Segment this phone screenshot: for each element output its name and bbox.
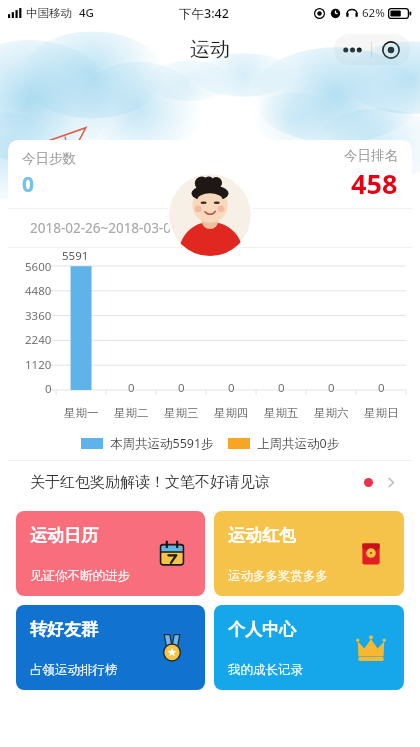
staticText: 运动多多奖赏多多 bbox=[228, 568, 328, 584]
staticText: 占领运动排行榜 bbox=[30, 662, 118, 678]
staticText: 星期四 bbox=[214, 406, 249, 420]
staticText: 0 bbox=[328, 380, 335, 396]
staticText: 0 bbox=[22, 170, 35, 199]
staticText: 运动 bbox=[190, 37, 230, 62]
staticText: 星期一 bbox=[64, 406, 99, 420]
button[interactable]: User avatar bbox=[169, 174, 251, 256]
button[interactable]: 运动日历 bbox=[16, 511, 205, 596]
staticText: 本周共运动5591步 bbox=[110, 435, 214, 452]
staticText: 0 bbox=[128, 380, 135, 396]
button[interactable]: 运动红包 bbox=[214, 511, 404, 596]
button[interactable]: 关于红包奖励解读！文笔不好请见谅 bbox=[8, 461, 412, 503]
staticText: 0 bbox=[228, 380, 235, 396]
staticText: 下午3:42 bbox=[179, 5, 229, 22]
staticText: 今日排名 bbox=[344, 147, 398, 164]
staticText: 2018-02-26~2018-03-04运动步数 bbox=[30, 219, 233, 237]
staticText: 上周共运动0步 bbox=[257, 435, 340, 452]
staticText: 个人中心 bbox=[228, 619, 296, 640]
staticText: 5591 bbox=[62, 248, 89, 264]
staticText: 2240 bbox=[25, 332, 52, 348]
staticText: 关于红包奖励解读！文笔不好请见谅 bbox=[30, 473, 270, 492]
staticText: 62% bbox=[362, 5, 385, 21]
staticText: 星期六 bbox=[314, 406, 349, 420]
staticText: 星期三 bbox=[164, 406, 199, 420]
button[interactable]: Target bbox=[372, 34, 410, 65]
staticText: 我的成长记录 bbox=[228, 662, 303, 678]
staticText: 运动红包 bbox=[228, 525, 296, 546]
staticText: 458 bbox=[351, 165, 398, 202]
staticText: 0 bbox=[278, 380, 285, 396]
button[interactable]: More options bbox=[334, 34, 371, 65]
staticText: 4G bbox=[79, 5, 94, 21]
staticText: 星期二 bbox=[114, 406, 149, 420]
staticText: 0 bbox=[378, 380, 385, 396]
staticText: 中国移动 bbox=[26, 6, 72, 20]
staticText: 5600 bbox=[25, 259, 52, 275]
staticText: 见证你不断的进步 bbox=[30, 568, 130, 584]
staticText: 星期五 bbox=[264, 406, 299, 420]
staticText: 0 bbox=[178, 380, 185, 396]
staticText: 今日步数 bbox=[22, 150, 76, 167]
staticText: 3360 bbox=[25, 308, 52, 324]
button[interactable]: 个人中心 bbox=[214, 605, 404, 690]
staticText: 转好友群 bbox=[30, 619, 98, 640]
button[interactable]: 转好友群 bbox=[16, 605, 205, 690]
staticText: 1120 bbox=[25, 357, 52, 373]
staticText: 星期日 bbox=[364, 406, 399, 420]
staticText: 4480 bbox=[25, 283, 52, 299]
staticText: 运动日历 bbox=[30, 525, 98, 546]
staticText: 0 bbox=[45, 381, 52, 397]
